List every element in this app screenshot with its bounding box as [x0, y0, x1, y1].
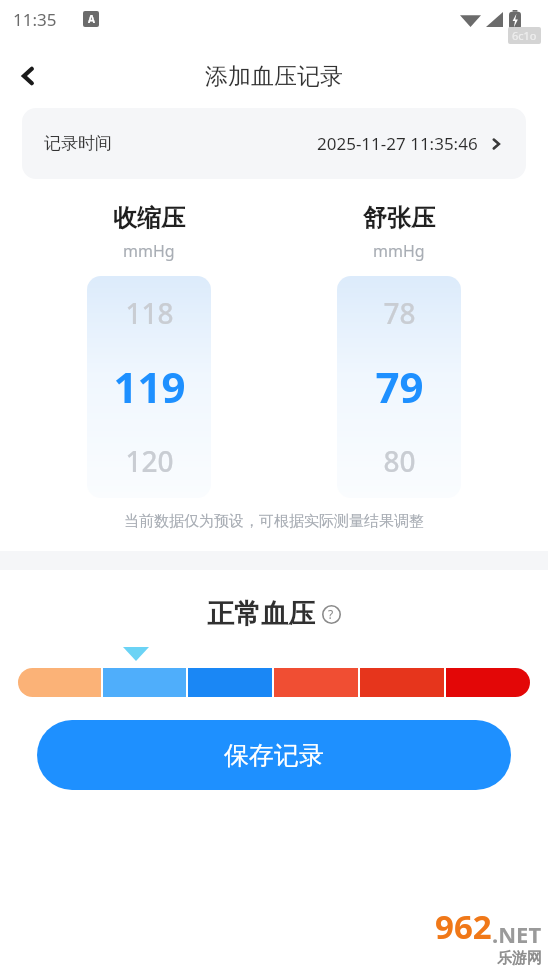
- staticText: 80: [383, 442, 416, 480]
- staticText: 6c1o: [512, 28, 537, 43]
- button[interactable]: 78: [337, 276, 461, 498]
- staticText: 正常血压: [207, 597, 315, 631]
- staticText: 舒张压: [363, 203, 435, 233]
- staticText: 保存记录: [224, 740, 324, 771]
- staticText: A: [88, 12, 95, 26]
- staticText: 当前数据仅为预设，可根据实际测量结果调整: [124, 512, 424, 531]
- button[interactable]: 保存记录: [37, 720, 511, 790]
- staticText: ?: [328, 606, 334, 622]
- staticText: 119: [113, 358, 186, 415]
- button[interactable]: 记录时间: [22, 108, 526, 179]
- staticText: 79: [375, 358, 424, 415]
- staticText: 120: [125, 442, 174, 480]
- staticText: .NET: [492, 919, 542, 949]
- staticText: mmHg: [373, 240, 425, 262]
- staticText: mmHg: [123, 240, 175, 262]
- button[interactable]: 118: [87, 276, 211, 498]
- staticText: 962: [435, 904, 492, 949]
- button[interactable]: Help: [320, 603, 342, 625]
- staticText: 2025-11-27 11:35:46: [317, 132, 478, 155]
- staticText: 添加血压记录: [205, 62, 343, 91]
- staticText: 记录时间: [44, 133, 112, 154]
- staticText: 乐游网: [497, 949, 542, 968]
- staticText: 11:35: [13, 8, 57, 31]
- staticText: 收缩压: [113, 203, 185, 233]
- button[interactable]: Back: [0, 48, 56, 104]
- staticText: 118: [125, 294, 174, 332]
- staticText: 78: [383, 294, 416, 332]
